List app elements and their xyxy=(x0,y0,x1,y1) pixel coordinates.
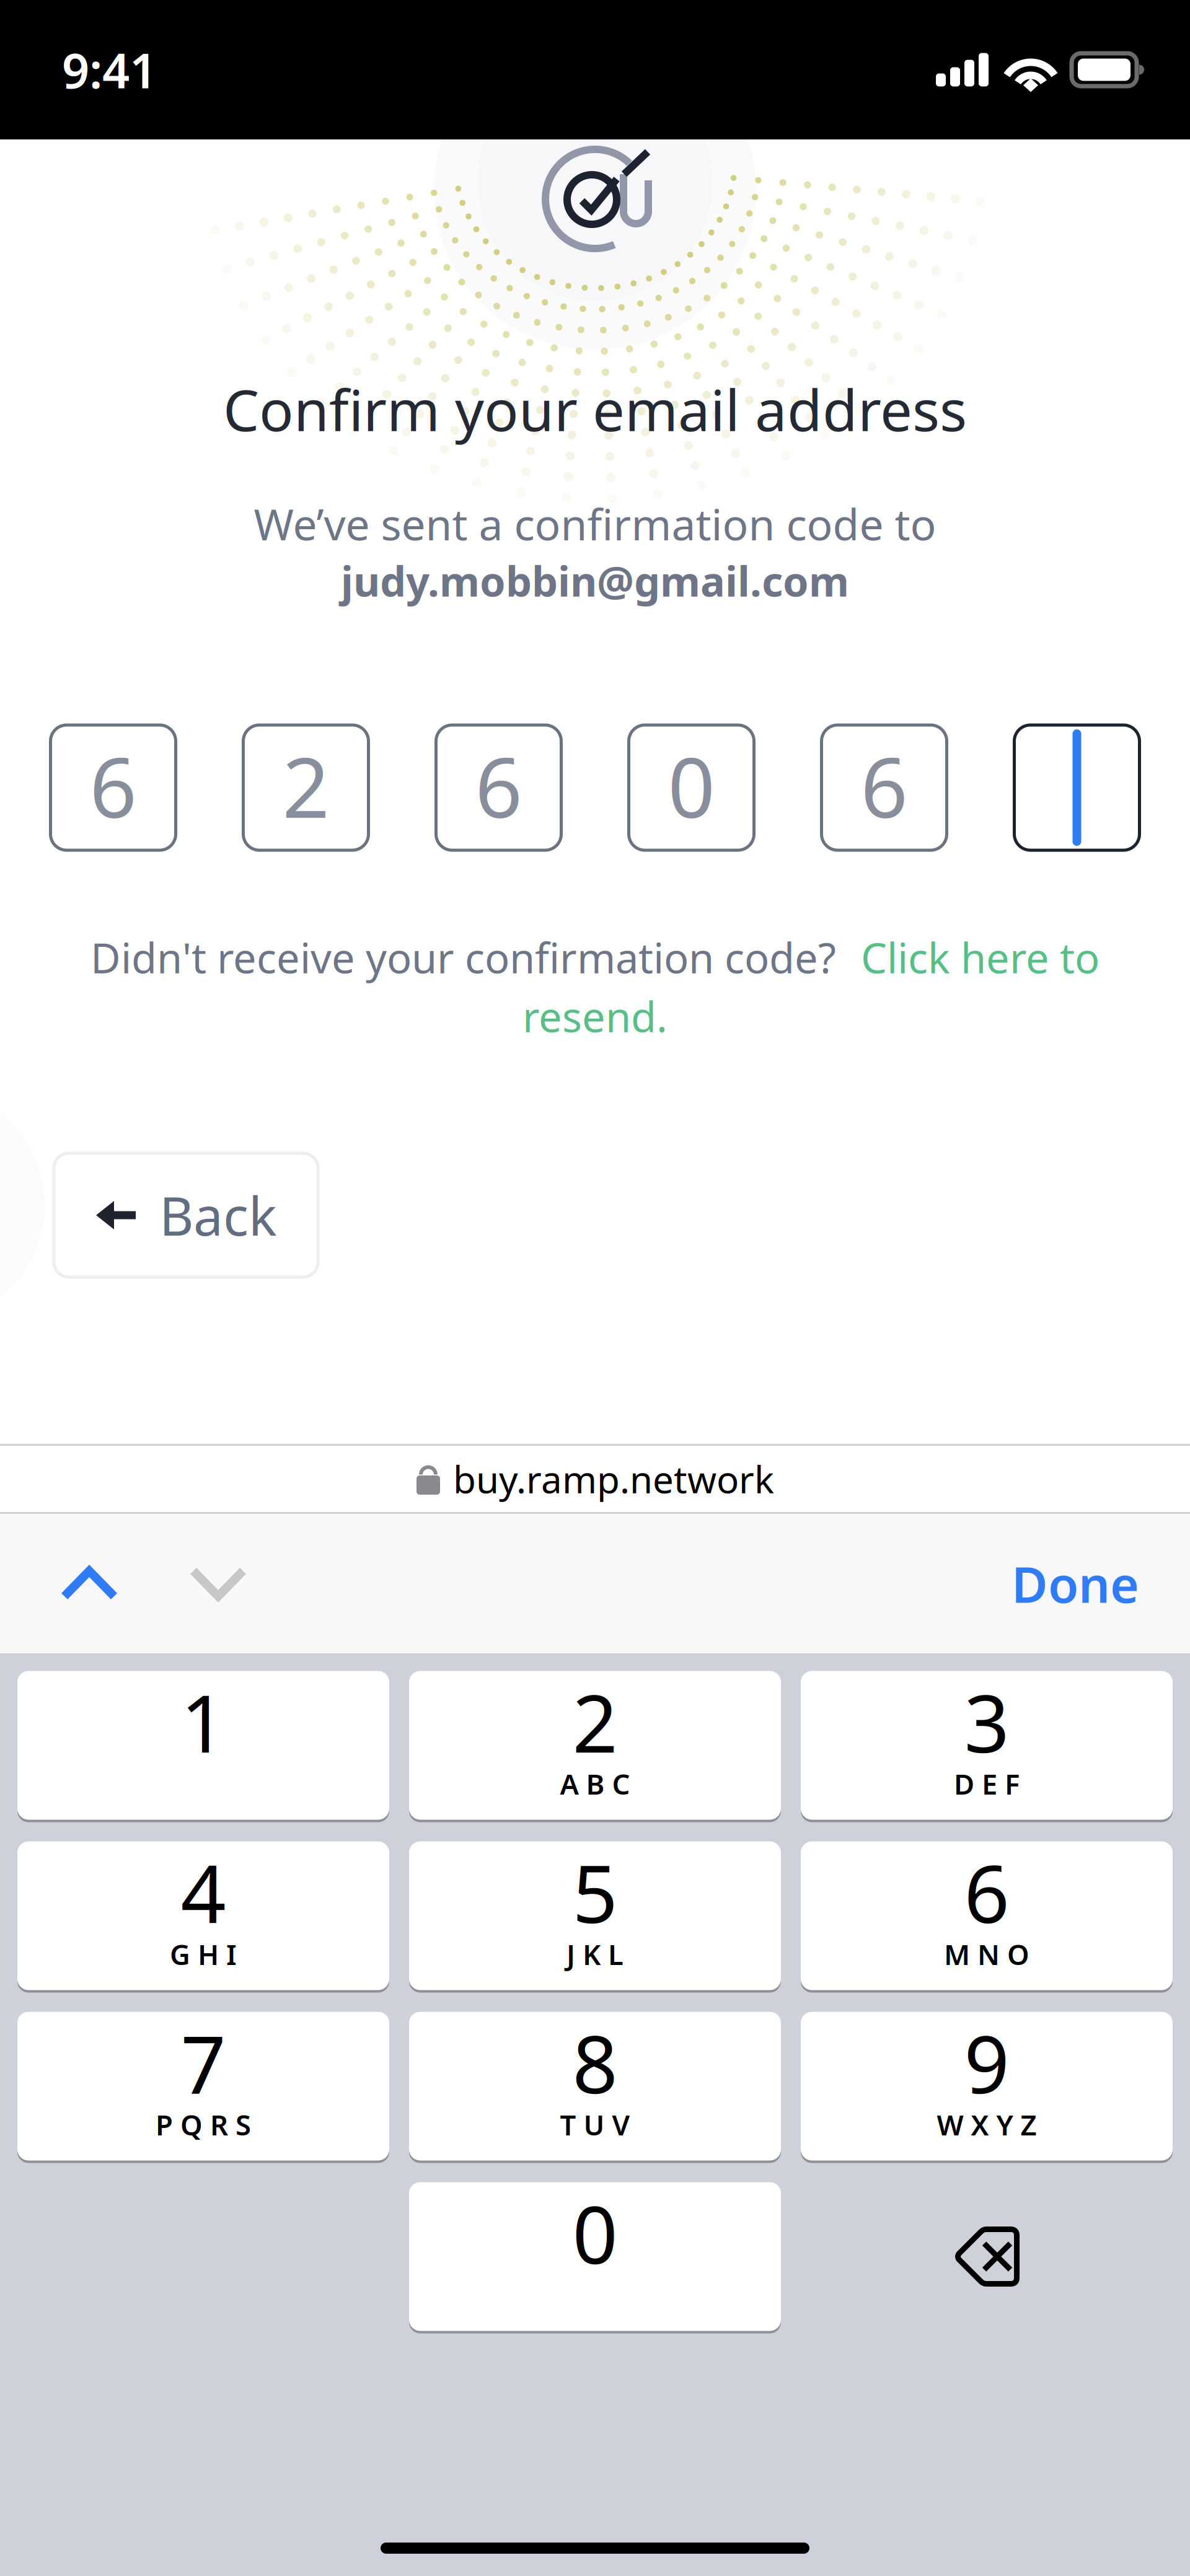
staticText: 0 xyxy=(572,2180,618,2286)
staticText: 9 xyxy=(964,2010,1009,2115)
staticText: Back xyxy=(159,1180,277,1250)
button[interactable]: Click here to xyxy=(861,930,1100,985)
button[interactable]: Code digit 2 xyxy=(243,725,368,850)
staticText: judy.mobbin@gmail.com xyxy=(341,553,849,608)
staticText: W X Y Z xyxy=(937,2106,1037,2143)
button[interactable]: 5 xyxy=(409,1841,781,1990)
staticText: P Q R S xyxy=(156,2106,251,2143)
staticText: Click here to xyxy=(861,930,1100,985)
staticText: 6 xyxy=(475,731,522,841)
button[interactable]: resend. xyxy=(522,989,668,1044)
staticText: J K L xyxy=(566,1936,624,1973)
button[interactable]: Delete xyxy=(801,2182,1173,2331)
button[interactable]: Next field xyxy=(157,1514,279,1653)
staticText: 6 xyxy=(861,731,908,841)
button[interactable]: 1 xyxy=(17,1671,389,1820)
staticText: G H I xyxy=(170,1936,237,1973)
button[interactable]: Done xyxy=(1011,1514,1190,1653)
button[interactable]: 9 xyxy=(801,2012,1173,2161)
staticText: 3 xyxy=(964,1669,1009,1774)
staticText: 9:41 xyxy=(62,38,157,102)
staticText: Done xyxy=(1011,1551,1139,1616)
button[interactable]: 6 xyxy=(801,1841,1173,1990)
staticText: Didn't receive your confirmation code? xyxy=(90,930,836,985)
staticText: 4 xyxy=(181,1840,226,1945)
button[interactable]: 8 xyxy=(409,2012,781,2161)
staticText: buy.ramp.network xyxy=(453,1454,774,1504)
staticText: resend. xyxy=(522,989,668,1044)
staticText: 2 xyxy=(282,731,329,841)
button[interactable]: 4 xyxy=(17,1841,389,1990)
staticText: T U V xyxy=(560,2106,630,2143)
staticText: 5 xyxy=(572,1840,618,1945)
staticText: 6 xyxy=(964,1840,1009,1945)
button[interactable]: 3 xyxy=(801,1671,1173,1820)
button[interactable]: Code digit, empty xyxy=(1014,725,1139,850)
button[interactable]: Code digit 6 xyxy=(51,725,176,850)
button[interactable]: Code digit 6 xyxy=(436,725,561,850)
staticText: 1 xyxy=(181,1669,226,1774)
button[interactable]: Code digit 6 xyxy=(822,725,947,850)
staticText: 7 xyxy=(181,2010,226,2115)
staticText: 6 xyxy=(90,731,137,841)
staticText: Confirm your email address xyxy=(223,371,967,447)
staticText: D E F xyxy=(954,1765,1020,1802)
staticText: A B C xyxy=(560,1765,630,1802)
staticText: We’ve sent a confirmation code to xyxy=(254,495,936,552)
staticText: 0 xyxy=(668,731,715,841)
button[interactable]: Previous field xyxy=(29,1514,150,1653)
button[interactable]: Back xyxy=(54,1153,318,1277)
button[interactable]: 7 xyxy=(17,2012,389,2161)
button[interactable]: 0 xyxy=(409,2182,781,2331)
button[interactable]: Code digit 0 xyxy=(629,725,754,850)
staticText: 8 xyxy=(572,2010,618,2115)
staticText: M N O xyxy=(944,1936,1029,1973)
button[interactable]: 2 xyxy=(409,1671,781,1820)
staticText: 2 xyxy=(572,1669,618,1774)
